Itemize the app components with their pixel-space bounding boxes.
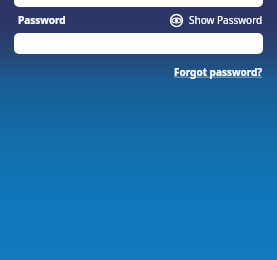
- button[interactable]: Show Password: [170, 13, 263, 27]
- other: Show Password: [170, 14, 183, 27]
- staticText: Password: [18, 13, 66, 27]
- staticText: Forgot password?: [174, 65, 263, 79]
- button[interactable]: [14, 33, 263, 54]
- button[interactable]: [14, 0, 263, 7]
- button[interactable]: Forgot password?: [174, 65, 263, 79]
- staticText: Show Password: [189, 13, 263, 27]
